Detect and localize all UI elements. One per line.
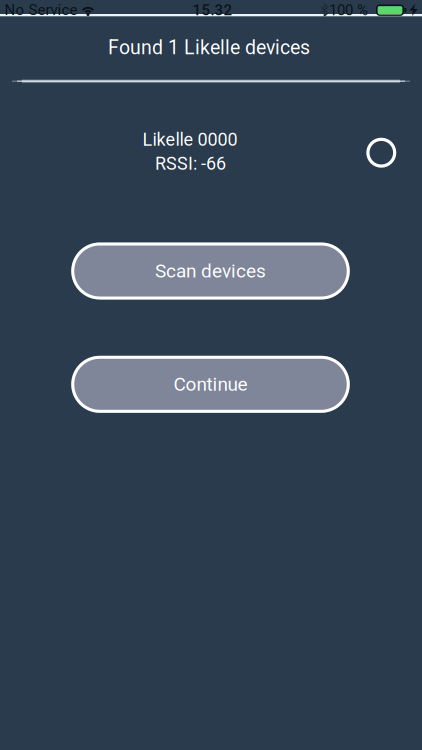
- button[interactable]: Likelle 0000, RSSI: -66: [0, 115, 422, 190]
- button[interactable]: Scan devices: [71, 242, 350, 299]
- staticText: 100 %: [329, 1, 368, 19]
- staticText: Continue: [173, 373, 247, 395]
- staticText: Found 1 Likelle devices: [108, 36, 310, 59]
- staticText: Likelle 0000: [142, 129, 237, 150]
- button[interactable]: Continue: [71, 356, 350, 413]
- staticText: 15.32: [192, 1, 232, 19]
- staticText: Scan devices: [155, 260, 266, 282]
- staticText: RSSI: -66: [155, 153, 226, 174]
- staticText: No Service: [4, 1, 77, 19]
